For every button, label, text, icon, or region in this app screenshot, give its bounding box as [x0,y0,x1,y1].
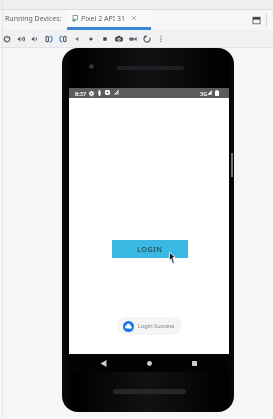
button[interactable]: Power [0,30,14,47]
button[interactable]: Home [142,356,157,371]
button[interactable]: Record screen [126,30,140,47]
button[interactable]: More options [154,30,168,47]
staticText: Running Devices: [5,14,62,24]
button[interactable]: Layout options [252,16,261,25]
staticText: Login Success [138,322,175,330]
button[interactable]: Take screenshot [112,30,126,47]
button[interactable]: Close Pixel 2 API 31 tab [131,15,137,21]
button[interactable]: Rotate right [56,30,70,47]
button[interactable]: LOGIN [112,240,188,258]
button[interactable]: Recent apps [187,356,202,371]
button[interactable]: Volume up [14,30,28,47]
staticText: 8:37 [75,90,87,98]
button[interactable]: Back [96,356,111,371]
staticText: Pixel 2 API 31 [81,14,125,24]
button[interactable]: Home [84,30,98,47]
button[interactable]: Login Success [117,317,182,335]
button[interactable]: Back [70,30,84,47]
button[interactable] [67,10,151,28]
button[interactable]: Rotate left [42,30,56,47]
button[interactable]: Volume down [28,30,42,47]
staticText: 3G [200,90,208,98]
button[interactable]: Overview [98,30,112,47]
button[interactable]: Reset [140,30,154,47]
staticText: LOGIN [137,244,163,254]
